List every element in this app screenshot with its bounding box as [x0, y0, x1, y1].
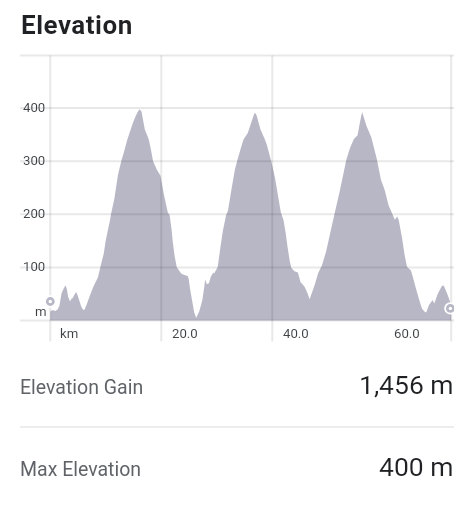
staticText: 400 m	[379, 451, 454, 482]
staticText: 20.0	[172, 326, 198, 341]
staticText: 300	[23, 153, 46, 168]
staticText: 200	[23, 206, 46, 221]
staticText: Elevation Gain	[20, 376, 144, 399]
staticText: 40.0	[283, 326, 309, 341]
button[interactable]: Elevation Gain	[0, 349, 454, 426]
staticText: 400	[23, 100, 46, 115]
staticText: m	[35, 304, 47, 319]
button[interactable]: Max Elevation	[0, 428, 454, 510]
staticText: 1,456 m	[359, 369, 454, 400]
staticText: Elevation	[21, 10, 133, 40]
staticText: 60.0	[394, 326, 420, 341]
staticText: km	[60, 326, 79, 341]
staticText: 100	[23, 259, 46, 274]
staticText: Max Elevation	[20, 458, 142, 481]
